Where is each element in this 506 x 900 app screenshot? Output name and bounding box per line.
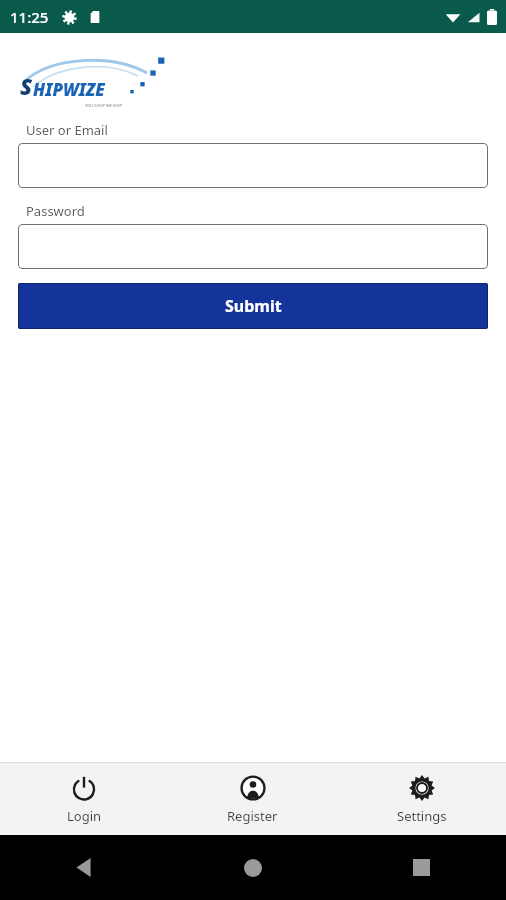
staticText: 11:25	[10, 7, 49, 27]
other: Home	[244, 859, 262, 877]
button[interactable]: Settings	[337, 768, 506, 831]
button[interactable]: Register	[168, 768, 337, 831]
staticText: S	[20, 71, 33, 101]
staticText: User or Email	[26, 121, 108, 139]
staticText: YOU SHOP WE SHIP	[85, 103, 122, 108]
other: Back	[75, 858, 94, 877]
button[interactable]	[18, 143, 488, 188]
button[interactable]: Submit	[18, 283, 488, 329]
staticText: Password	[26, 202, 85, 220]
staticText: Settings	[397, 807, 447, 825]
button[interactable]: Login	[0, 768, 168, 831]
staticText: Login	[67, 807, 102, 825]
button[interactable]	[18, 224, 488, 269]
staticText: HIPWIZE	[33, 78, 105, 101]
staticText: Register	[227, 807, 278, 825]
staticText: Submit	[225, 295, 282, 317]
